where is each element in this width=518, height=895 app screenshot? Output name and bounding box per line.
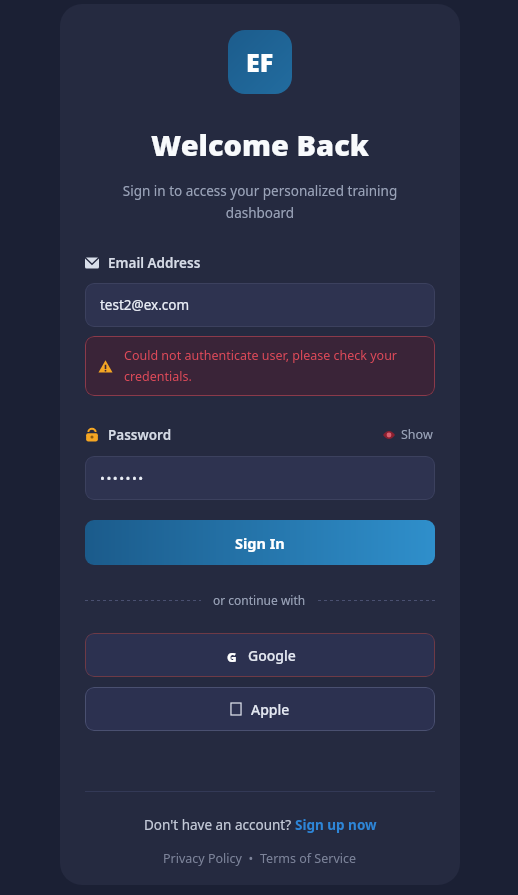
staticText: • bbox=[242, 850, 260, 867]
other: Apple bbox=[230, 703, 242, 715]
staticText: Privacy Policy bbox=[163, 850, 242, 867]
other: Google bbox=[225, 648, 239, 662]
staticText: Sign In bbox=[235, 533, 285, 553]
button[interactable]: ••••••• bbox=[85, 456, 435, 500]
staticText: Google bbox=[248, 646, 296, 665]
button[interactable]: Privacy Policy bbox=[163, 850, 242, 867]
staticText: Could not authenticate user, please chec… bbox=[124, 347, 422, 385]
button[interactable]: Sign up now bbox=[295, 816, 377, 834]
staticText: Terms of Service bbox=[260, 850, 357, 867]
staticText: test2@ex.com bbox=[100, 296, 190, 314]
other: Show password bbox=[383, 429, 395, 441]
staticText: Apple bbox=[251, 700, 290, 719]
staticText: Show bbox=[401, 426, 433, 443]
staticText: EF bbox=[246, 45, 274, 79]
button[interactable]: test2@ex.com bbox=[85, 283, 435, 327]
button[interactable]: Terms of Service bbox=[260, 850, 357, 867]
staticText: Password bbox=[108, 426, 172, 444]
button[interactable]: Apple bbox=[85, 687, 435, 731]
staticText: ••••••• bbox=[100, 469, 145, 487]
button[interactable]: Google bbox=[85, 633, 435, 677]
staticText: Sign up now bbox=[295, 816, 377, 834]
button[interactable]: Show password bbox=[381, 424, 435, 445]
staticText: Sign in to access your personalized trai… bbox=[93, 182, 427, 222]
staticText: Welcome Back bbox=[151, 125, 369, 164]
button[interactable]: Sign In bbox=[85, 520, 435, 565]
staticText: G bbox=[227, 648, 237, 662]
staticText: Email Address bbox=[108, 254, 201, 272]
staticText: Don't have an account? bbox=[144, 816, 295, 834]
staticText: or continue with bbox=[213, 592, 306, 608]
